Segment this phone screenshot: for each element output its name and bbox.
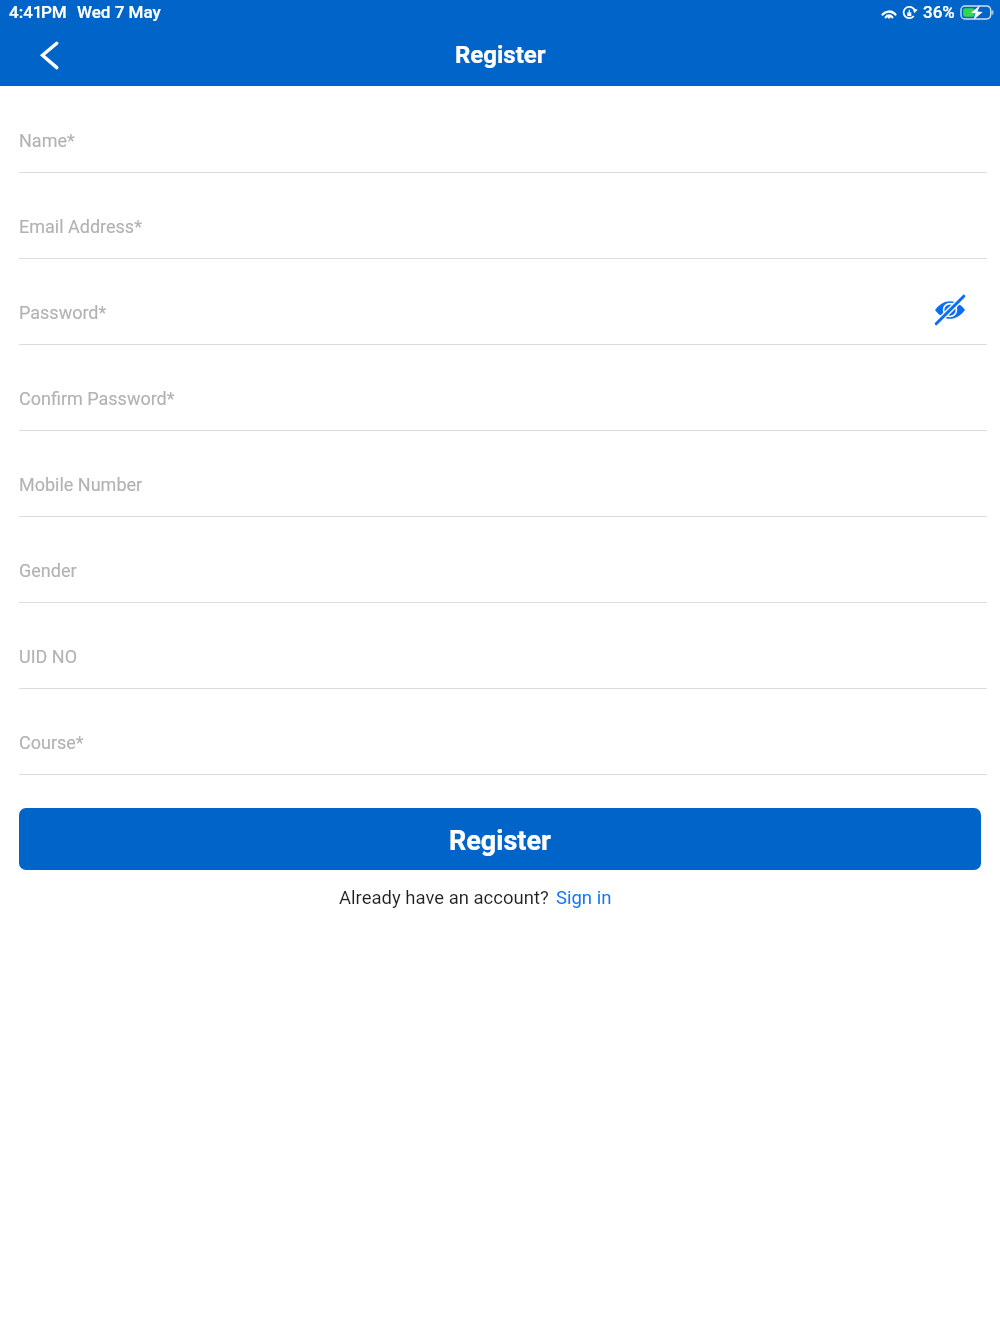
button[interactable]: Show password (928, 288, 972, 332)
button[interactable]: Mobile Number (19, 431, 981, 516)
button[interactable]: Name* (19, 87, 981, 172)
staticText: Sign in (556, 887, 612, 909)
staticText: 4:41 (9, 2, 43, 22)
staticText: Email Address* (19, 216, 142, 237)
button[interactable]: Password* (19, 259, 981, 344)
staticText: Wed 7 May (77, 2, 161, 22)
staticText: Name* (19, 130, 75, 151)
staticText: 36% (923, 2, 955, 22)
button[interactable]: Gender (19, 517, 981, 602)
button[interactable]: Confirm Password* (19, 345, 981, 430)
button[interactable]: Register (19, 808, 981, 870)
button[interactable]: Back (24, 28, 68, 72)
staticText: UID NO (19, 646, 78, 667)
staticText: Course* (19, 732, 84, 753)
button[interactable]: Course* (19, 689, 981, 774)
staticText: Password* (19, 302, 107, 323)
staticText: Register (455, 41, 546, 69)
button[interactable]: Sign in (556, 887, 612, 909)
staticText: PM (41, 2, 67, 22)
button[interactable]: Email Address* (19, 173, 981, 258)
staticText: Gender (19, 560, 77, 581)
button[interactable]: UID NO (19, 603, 981, 688)
staticText: Mobile Number (19, 474, 143, 495)
staticText: Confirm Password* (19, 388, 175, 409)
staticText: Register (449, 825, 551, 857)
staticText: Already have an account? (339, 887, 549, 909)
